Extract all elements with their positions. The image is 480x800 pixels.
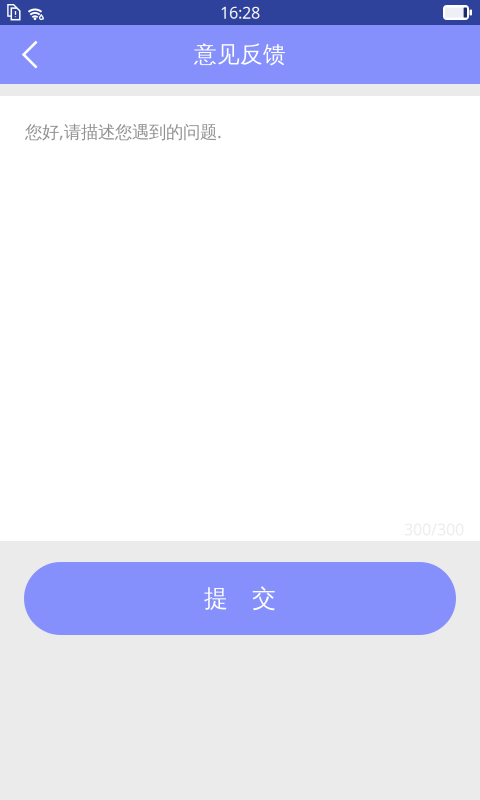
staticText: 您好,请描述您遇到的问题. bbox=[25, 120, 222, 143]
staticText: 16:28 bbox=[220, 2, 260, 23]
button[interactable]: 提 交 bbox=[24, 562, 456, 635]
button[interactable]: 您好,请描述您遇到的问题. bbox=[0, 96, 480, 541]
staticText: 300/300 bbox=[404, 519, 464, 540]
staticText: 意见反馈 bbox=[194, 41, 286, 68]
button[interactable]: Back bbox=[0, 25, 56, 84]
staticText: 提 交 bbox=[204, 584, 276, 613]
